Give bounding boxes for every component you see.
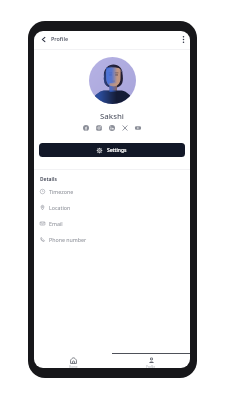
- button[interactable]: Home: [34, 353, 112, 368]
- button[interactable]: Profile: [112, 353, 190, 368]
- button[interactable]: LinkedIn: [109, 125, 115, 131]
- staticText: Profile: [51, 35, 69, 42]
- staticText: Profile: [146, 365, 156, 368]
- button[interactable]: Back: [38, 34, 49, 45]
- button[interactable]: Settings: [39, 143, 185, 157]
- button[interactable]: More options: [178, 34, 189, 45]
- button[interactable]: Instagram: [96, 125, 102, 131]
- staticText: Location: [49, 204, 71, 211]
- button[interactable]: Location: [34, 199, 190, 215]
- staticText: Timezone: [49, 188, 74, 195]
- staticText: Details: [40, 176, 57, 183]
- staticText: Home: [69, 365, 78, 368]
- staticText: Settings: [107, 147, 127, 154]
- staticText: Sakshi: [34, 111, 190, 122]
- button[interactable]: X: [122, 125, 128, 131]
- button[interactable]: Timezone: [34, 183, 190, 199]
- staticText: Phone number: [49, 236, 87, 243]
- button[interactable]: Email: [34, 215, 190, 231]
- button[interactable]: Phone number: [34, 231, 190, 247]
- button[interactable]: Facebook: [83, 125, 89, 131]
- staticText: Email: [49, 220, 63, 227]
- button[interactable]: YouTube: [135, 125, 141, 131]
